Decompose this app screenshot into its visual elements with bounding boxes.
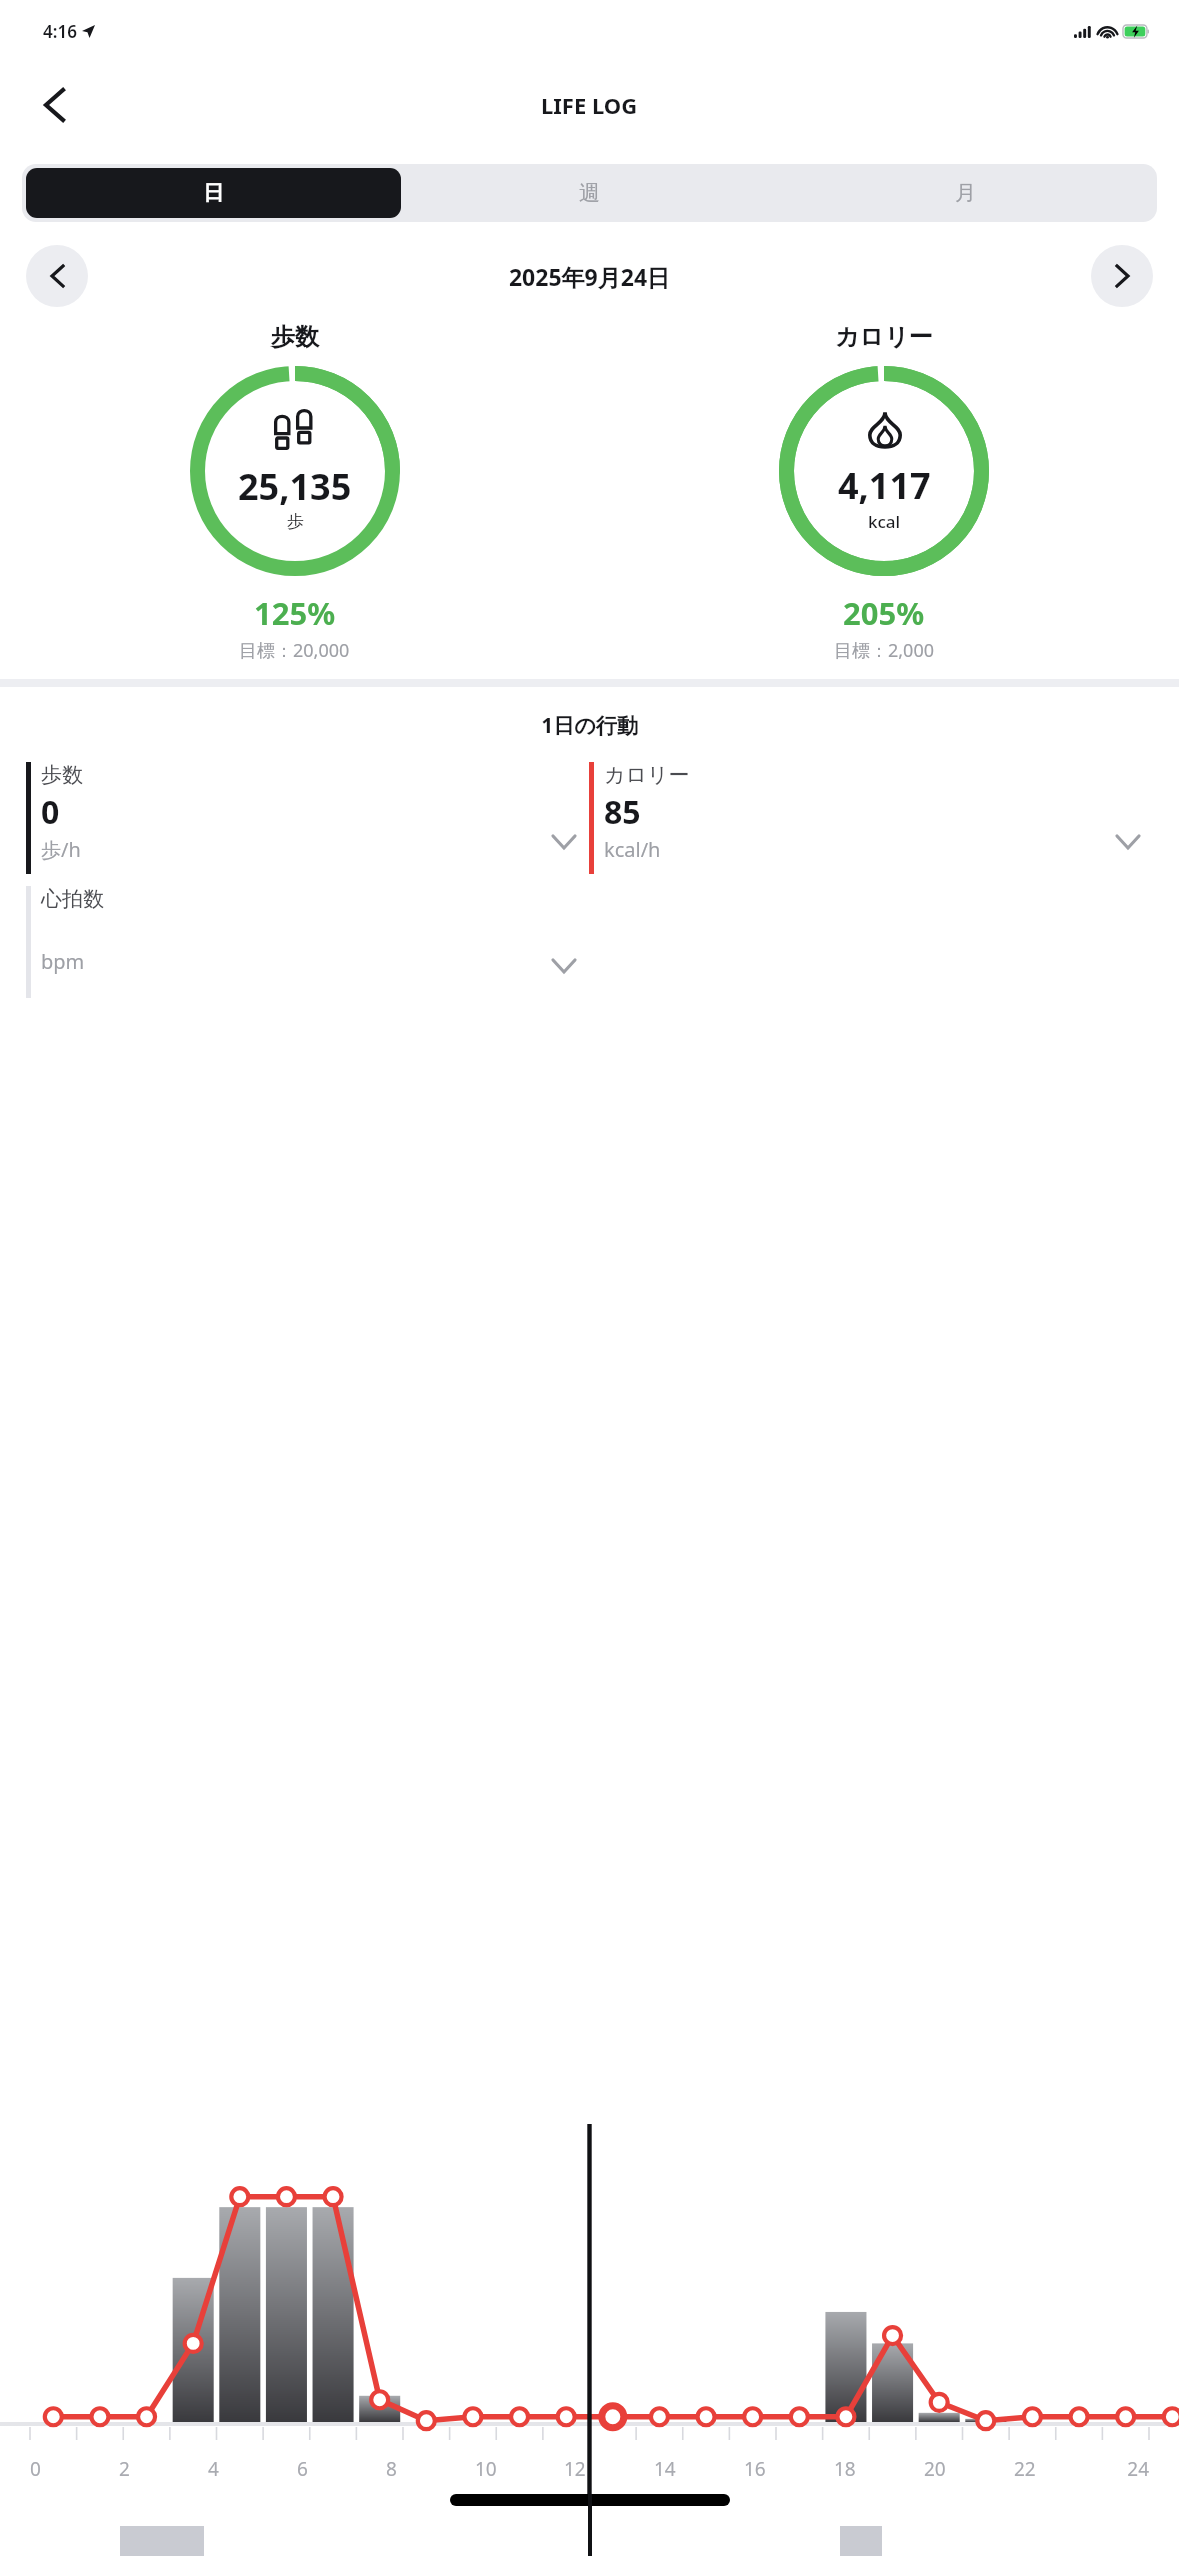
button[interactable]: Previous day	[26, 245, 88, 307]
staticText: 歩/h	[41, 836, 81, 863]
staticText: 週	[579, 180, 600, 206]
staticText: 歩数	[271, 322, 319, 352]
staticText: 目標：2,000	[834, 638, 935, 663]
staticText: kcal/h	[604, 836, 661, 863]
staticText: 0	[30, 2456, 119, 2482]
staticText: 20	[924, 2456, 1014, 2482]
staticText: 日	[203, 180, 224, 206]
button[interactable]: Back	[26, 77, 82, 133]
staticText: 2	[119, 2456, 208, 2482]
staticText: 10	[475, 2456, 564, 2482]
staticText: 25,135	[238, 462, 352, 511]
staticText: LIFE LOG	[541, 90, 638, 120]
staticText: 1日の行動	[0, 711, 1179, 740]
button[interactable]: 週	[401, 168, 777, 218]
staticText: 0	[41, 790, 60, 834]
staticText: 月	[955, 180, 976, 206]
staticText: 22	[1014, 2456, 1104, 2482]
staticText: 18	[834, 2456, 924, 2482]
button[interactable]: カロリー	[589, 762, 1153, 874]
staticText: kcal	[868, 510, 901, 533]
staticText: カロリー	[604, 762, 690, 788]
staticText: bpm	[41, 948, 85, 975]
button[interactable]: 歩数	[26, 762, 589, 874]
staticText: 4	[208, 2456, 297, 2482]
staticText: 6	[297, 2456, 386, 2482]
staticText: 14	[654, 2456, 744, 2482]
staticText: 4,117	[838, 461, 931, 510]
staticText: 2025年9月24日	[88, 261, 1091, 292]
staticText: 目標：20,000	[239, 638, 350, 663]
button[interactable]: 日	[26, 168, 401, 218]
staticText: 24	[1104, 2456, 1149, 2482]
staticText: 16	[744, 2456, 834, 2482]
staticText: 4:16	[43, 20, 77, 43]
staticText: 85	[604, 790, 641, 834]
staticText: 125%	[254, 592, 336, 634]
staticText: 12	[564, 2456, 654, 2482]
staticText: 心拍数	[41, 886, 104, 912]
button[interactable]: 月	[777, 168, 1153, 218]
staticText: カロリー	[835, 322, 933, 352]
staticText: 歩数	[41, 762, 83, 788]
button[interactable]: 心拍数	[26, 886, 589, 998]
staticText: 8	[386, 2456, 475, 2482]
button[interactable]: Next day	[1091, 245, 1153, 307]
staticText: 歩	[287, 511, 304, 532]
staticText: 205%	[843, 592, 925, 634]
